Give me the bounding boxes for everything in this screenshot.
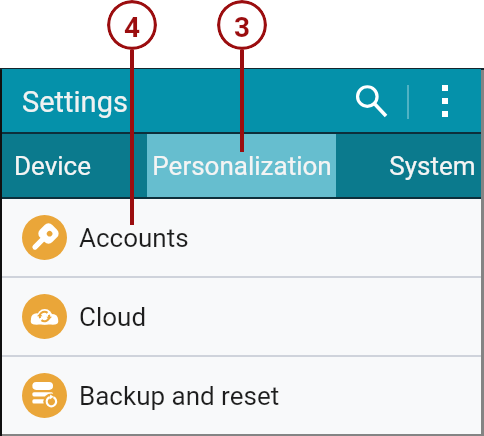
button[interactable]: Cloud	[2, 278, 481, 355]
button[interactable]: Search	[338, 69, 404, 132]
button[interactable]: Backup and reset	[2, 357, 481, 434]
staticText: Personalization	[152, 151, 332, 181]
staticText: System	[389, 151, 476, 181]
button[interactable]: Personalization	[147, 134, 336, 197]
staticText: Cloud	[79, 302, 147, 332]
staticText: Settings	[22, 85, 128, 119]
button[interactable]: Accounts	[2, 199, 481, 276]
staticText: Device	[14, 151, 91, 181]
staticText: 4	[124, 11, 141, 44]
staticText: Accounts	[79, 223, 189, 253]
button[interactable]: System	[336, 134, 481, 197]
staticText: Backup and reset	[79, 381, 280, 411]
button[interactable]: More options	[415, 69, 474, 132]
button[interactable]: Device	[2, 134, 147, 197]
staticText: 3	[234, 11, 251, 44]
